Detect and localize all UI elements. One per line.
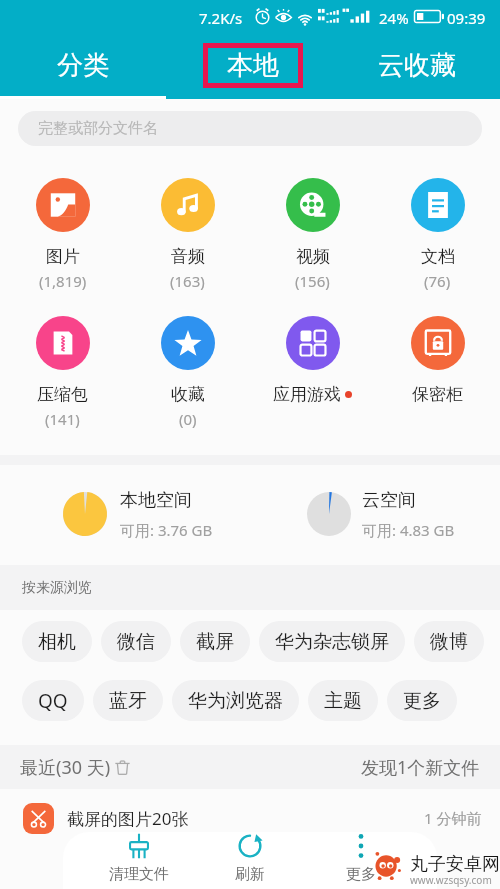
button[interactable]: 保密柜	[375, 316, 500, 405]
staticText: 1 分钟前	[424, 808, 482, 828]
staticText: (0)	[179, 409, 197, 429]
button[interactable]: 微博	[414, 621, 484, 662]
button[interactable]: 主题	[308, 680, 378, 721]
staticText: 7.2K/s	[199, 8, 243, 28]
staticText: 可用: 4.83 GB	[362, 520, 455, 540]
staticText: 按来源浏览	[22, 579, 92, 597]
button[interactable]: 云收藏	[333, 32, 500, 99]
button[interactable]: 微信	[101, 621, 171, 662]
staticText: QQ	[38, 688, 68, 714]
staticText: 收藏	[171, 384, 205, 405]
button[interactable]: 文档	[375, 178, 500, 291]
button[interactable]	[295, 480, 485, 550]
staticText: 蓝牙	[109, 689, 147, 713]
staticText: 09:39	[447, 8, 486, 28]
button[interactable]: 清理文件	[84, 832, 194, 889]
staticText: (76)	[424, 271, 451, 291]
button[interactable]: 图片	[0, 178, 125, 291]
button[interactable]: 压缩包	[0, 316, 125, 429]
button[interactable]: 华为浏览器	[172, 680, 299, 721]
staticText: (1,819)	[39, 271, 87, 291]
button[interactable]	[51, 480, 241, 550]
staticText: 可用: 3.76 GB	[120, 520, 213, 540]
staticText: 本地空间	[120, 489, 192, 512]
staticText: 云收藏	[378, 49, 456, 82]
staticText: 保密柜	[412, 384, 463, 405]
staticText: 完整或部分文件名	[38, 119, 158, 138]
staticText: 音频	[171, 246, 205, 267]
staticText: 截屏	[196, 630, 234, 654]
staticText: (141)	[45, 409, 80, 429]
staticText: 微信	[117, 630, 155, 654]
button[interactable]: QQ	[22, 680, 84, 721]
staticText: 华为浏览器	[188, 689, 283, 713]
staticText: 发现1个新文件	[361, 755, 480, 780]
button[interactable]: 截屏	[180, 621, 250, 662]
staticText: 图片	[46, 246, 80, 267]
staticText: 分类	[57, 49, 109, 82]
button[interactable]: 音频	[125, 178, 250, 291]
staticText: 相机	[38, 630, 76, 654]
staticText: 微博	[430, 630, 468, 654]
button[interactable]: 本地	[166, 32, 333, 99]
staticText: 截屏的图片20张	[67, 807, 189, 830]
button[interactable]: 截屏的图片20张	[0, 789, 500, 847]
staticText: 更多	[346, 865, 376, 884]
staticText: 丸子安卓网	[410, 853, 500, 876]
staticText: 清理文件	[109, 865, 169, 884]
button[interactable]: 蓝牙	[93, 680, 163, 721]
button[interactable]: 应用游戏	[250, 316, 375, 405]
staticText: 压缩包	[37, 384, 88, 405]
staticText: www.wzsqsy.com	[410, 873, 492, 887]
staticText: 主题	[324, 689, 362, 713]
staticText: 最近(30 天)	[20, 755, 111, 780]
staticText: 文档	[421, 246, 455, 267]
staticText: 24%	[379, 8, 409, 28]
staticText: (163)	[170, 271, 205, 291]
staticText: 更多	[403, 689, 441, 713]
button[interactable]: 分类	[0, 32, 166, 99]
button[interactable]: 收藏	[125, 316, 250, 429]
staticText: 应用游戏	[273, 384, 341, 405]
staticText: 刷新	[235, 865, 265, 884]
button[interactable]: Clear recent	[114, 759, 131, 776]
button[interactable]: 相机	[22, 621, 92, 662]
staticText: 本地	[224, 49, 276, 82]
staticText: (156)	[295, 271, 330, 291]
staticText: 本地	[227, 49, 279, 82]
button[interactable]: 华为杂志锁屏	[259, 621, 405, 662]
button[interactable]: 更多	[387, 680, 457, 721]
staticText: 云空间	[362, 489, 416, 512]
button[interactable]: 刷新	[195, 832, 305, 889]
staticText: 华为杂志锁屏	[275, 630, 389, 654]
button[interactable]: 完整或部分文件名	[18, 111, 482, 146]
staticText: 视频	[296, 246, 330, 267]
button[interactable]: 视频	[250, 178, 375, 291]
button[interactable]: 更多	[306, 832, 416, 889]
